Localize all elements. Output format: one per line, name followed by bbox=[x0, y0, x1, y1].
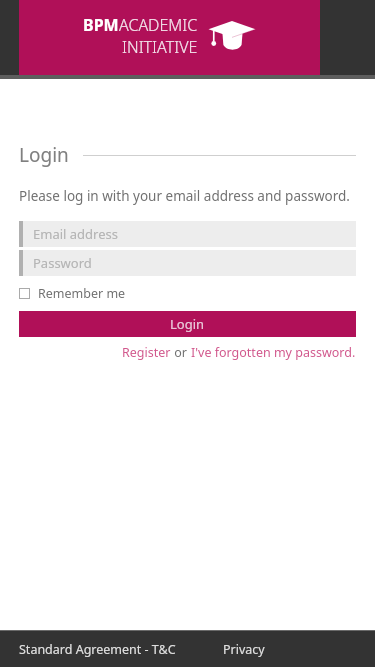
staticText: INITIATIVE bbox=[122, 36, 198, 58]
other: Graduation cap logo bbox=[208, 19, 256, 53]
staticText: Email address bbox=[33, 225, 118, 243]
staticText: Please log in with your email address an… bbox=[19, 187, 350, 205]
staticText: Login bbox=[170, 315, 205, 333]
staticText: ACADEMIC bbox=[119, 14, 198, 36]
button[interactable]: Standard Agreement - T&C bbox=[19, 641, 176, 658]
staticText: Privacy bbox=[223, 641, 265, 658]
button[interactable]: I've forgotten my password. bbox=[191, 344, 356, 361]
button[interactable]: Password bbox=[19, 250, 356, 276]
staticText: I've forgotten my password. bbox=[191, 344, 356, 361]
button[interactable]: Remember me bbox=[19, 283, 126, 304]
staticText: Standard Agreement - T&C bbox=[19, 641, 176, 658]
staticText: BPM bbox=[83, 14, 119, 36]
staticText: Remember me bbox=[38, 285, 126, 302]
staticText: Login bbox=[19, 142, 69, 168]
staticText: or bbox=[171, 344, 191, 361]
button[interactable]: Login bbox=[19, 311, 356, 337]
button[interactable]: Privacy bbox=[223, 641, 265, 658]
staticText: Register bbox=[122, 344, 171, 361]
staticText: Password bbox=[33, 254, 92, 272]
button[interactable]: Register bbox=[122, 344, 171, 361]
button[interactable]: Email address bbox=[19, 221, 356, 247]
